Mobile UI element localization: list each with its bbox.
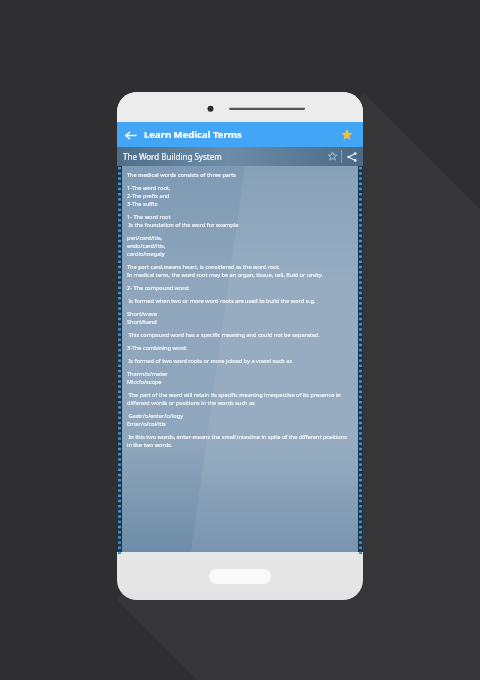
staticText: In this two words, enter-means the small… [127,433,353,449]
staticText: Short/wave Short/hand [127,310,353,326]
staticText: The part card,means heart, is considered… [127,263,353,279]
button[interactable]: Home [209,569,271,584]
staticText: This compound word has a specific meanin… [127,331,353,339]
button[interactable]: Share [342,147,361,166]
staticText: 3-The combining word: [127,344,353,352]
button[interactable]: Back [121,126,139,144]
staticText: 1-The word root, 2-The prefix and 3-The … [127,184,353,208]
staticText: 1- The word root Is the foundation of th… [127,213,353,229]
staticText: peri/card/itis, endo/card/itis, cardio/m… [127,234,353,258]
staticText: Gastr/o/enter/o/logy Enter/o/col/itis [127,412,353,428]
staticText: The part of the word will retain its spe… [127,391,353,407]
staticText: Is formed of two word roots or more join… [127,357,353,365]
staticText: The medical words consists of three part… [127,171,353,179]
staticText: Is formed when two or more word roots ar… [127,297,353,305]
staticText: Therm/o/meter Micr/o/scope [127,370,353,386]
staticText: The Word Building System [123,151,324,162]
staticText: Learn Medical Terms [144,128,337,141]
staticText: 2- The compound word: [127,284,353,292]
button[interactable]: Favorite [337,125,357,145]
button[interactable]: Bookmark [324,148,341,165]
